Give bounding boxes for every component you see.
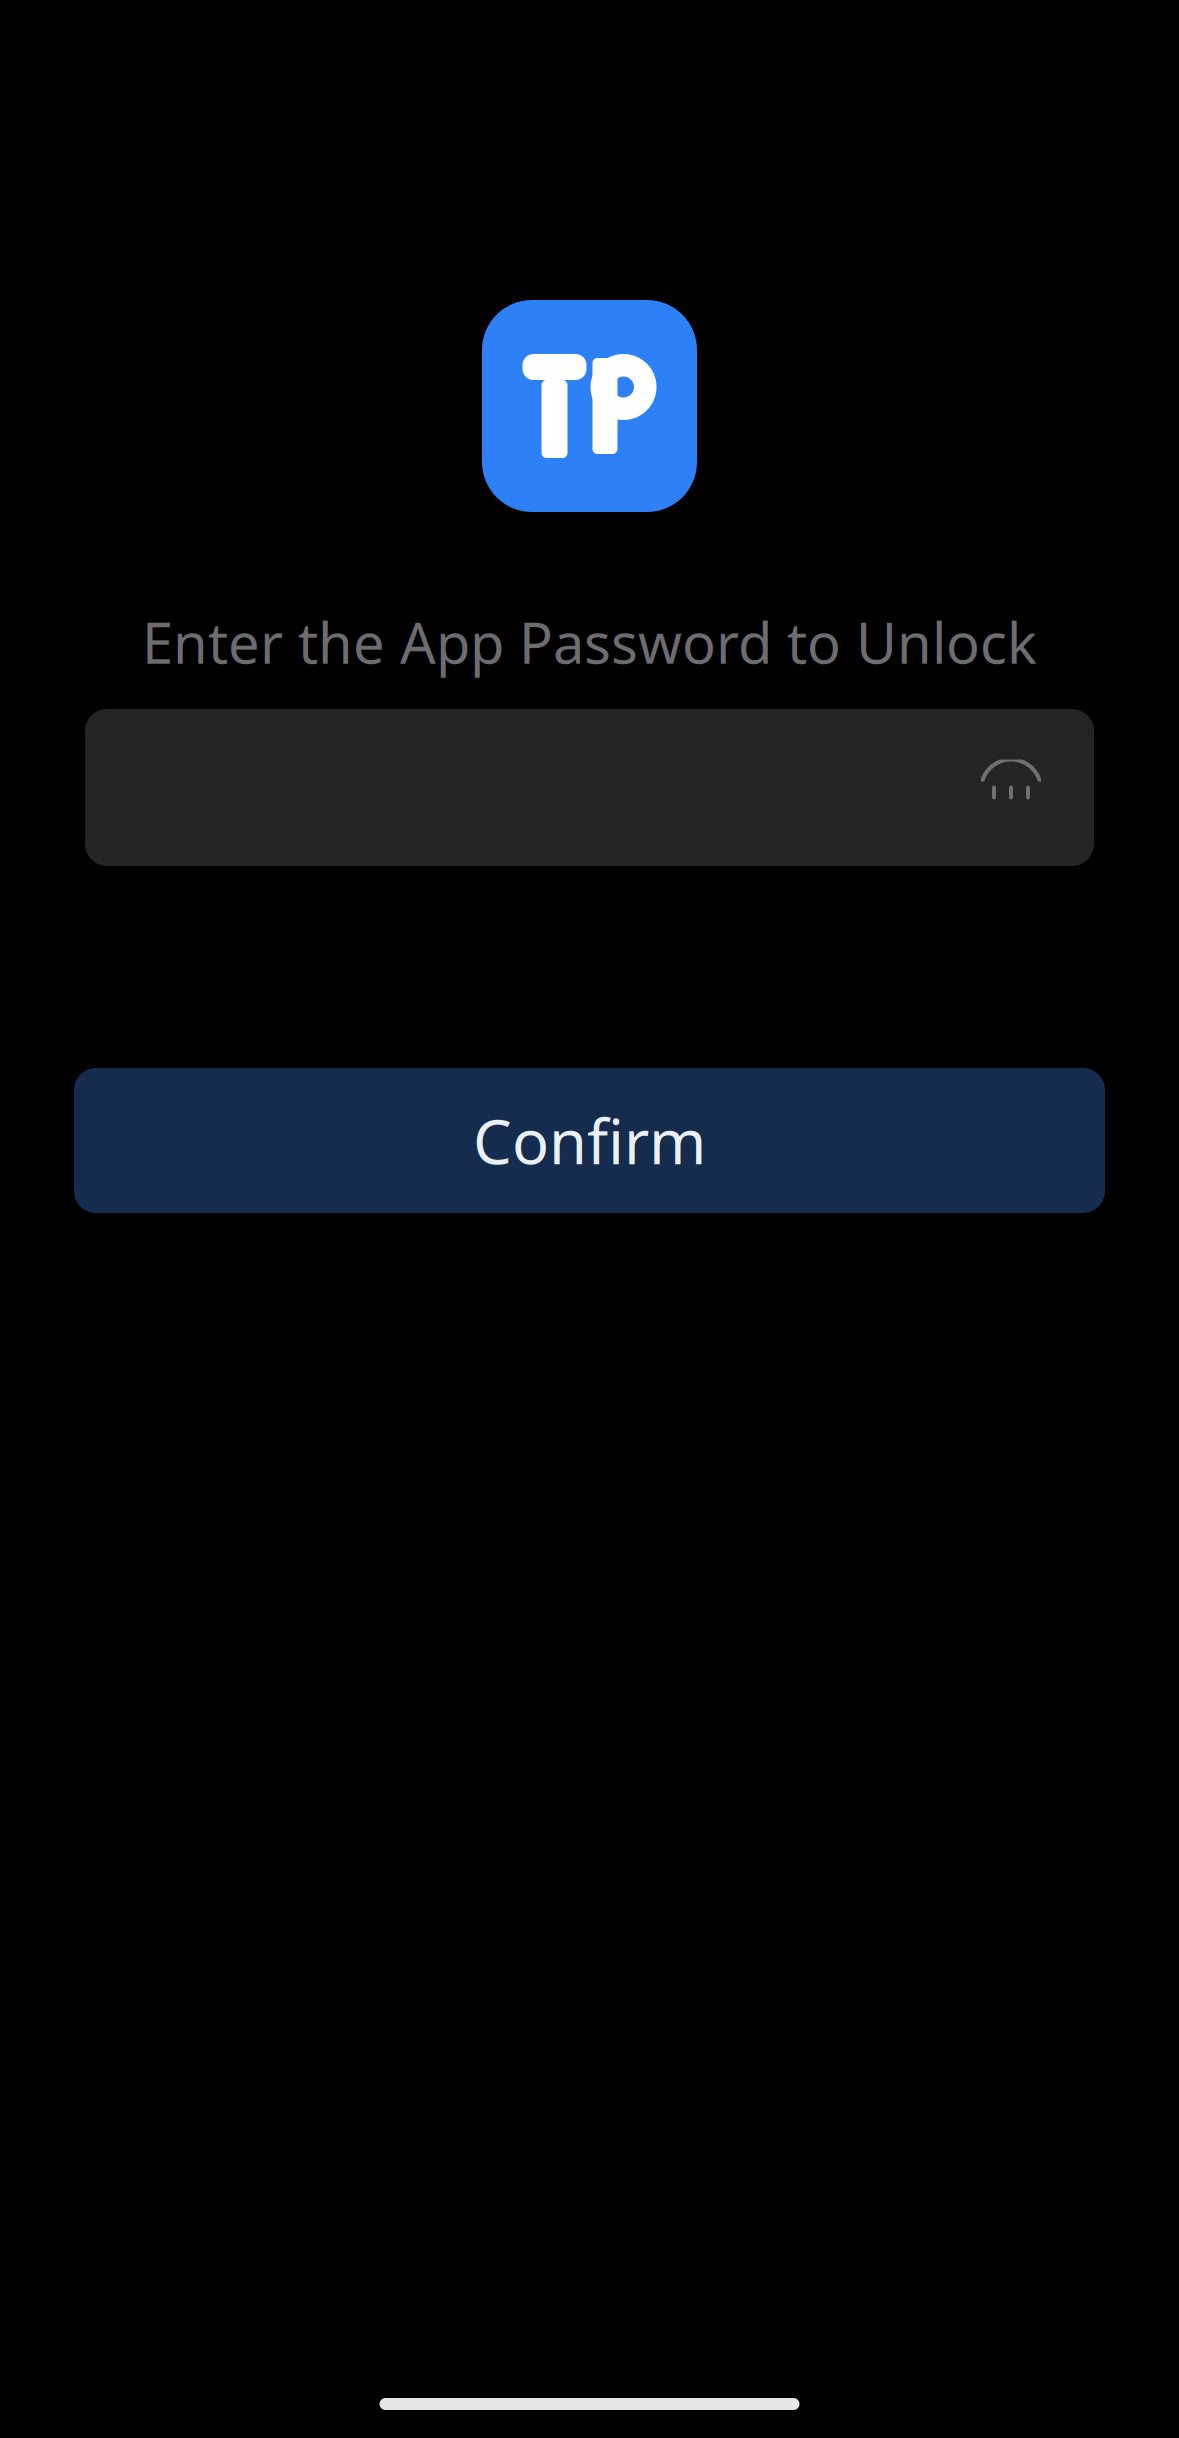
button[interactable]: Confirm [74,1068,1105,1213]
staticText: Enter the App Password to Unlock [142,605,1037,679]
staticText: Confirm [473,1100,706,1181]
button[interactable]: Show password [963,739,1059,835]
